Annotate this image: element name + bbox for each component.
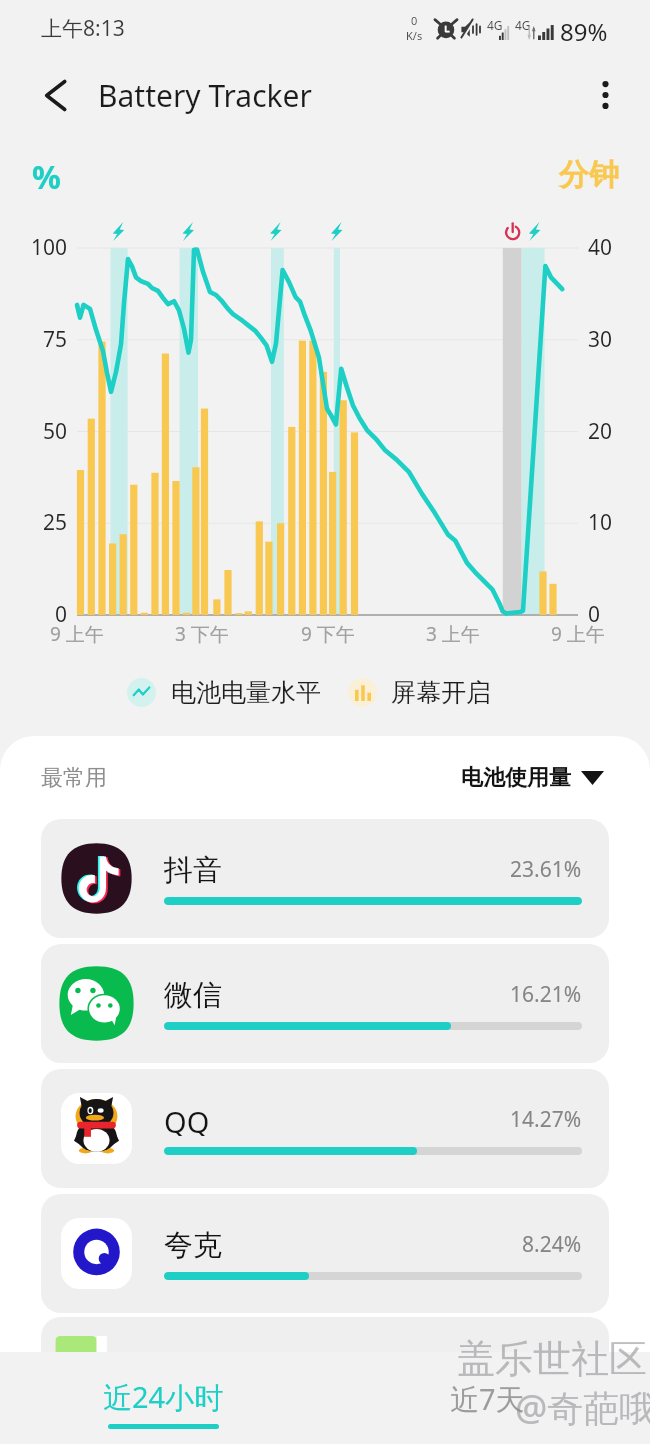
staticText: 3 下午 — [175, 621, 229, 647]
staticText: % — [32, 155, 61, 199]
staticText: 4G — [515, 17, 531, 33]
button[interactable] — [41, 1317, 609, 1352]
staticText: 8.24% — [522, 1230, 582, 1259]
staticText: K/s — [406, 28, 423, 43]
staticText: 75 — [43, 325, 68, 354]
staticText: @奇葩哦 — [515, 1383, 650, 1432]
button[interactable]: 近7天 — [416, 1352, 558, 1444]
staticText: 16.21% — [510, 980, 582, 1009]
button[interactable]: QQ — [41, 1069, 609, 1188]
staticText: 最常用 — [41, 764, 107, 792]
staticText: 30 — [588, 325, 613, 354]
staticText: 0 — [411, 13, 418, 28]
staticText: 10 — [588, 508, 613, 537]
staticText: 4G — [487, 17, 503, 33]
staticText: 9 下午 — [301, 621, 355, 647]
button[interactable]: More options — [574, 64, 636, 126]
staticText: 40 — [588, 233, 613, 262]
staticText: 50 — [43, 417, 68, 446]
staticText: 屏幕开启 — [391, 677, 491, 707]
staticText: 电池使用量 — [461, 764, 571, 792]
button[interactable]: 微信 — [41, 944, 609, 1063]
button[interactable]: Back — [22, 62, 88, 128]
staticText: 9 上午 — [50, 621, 104, 647]
staticText: 0 — [588, 600, 601, 629]
staticText: Battery Tracker — [98, 75, 312, 116]
staticText: 100 — [31, 233, 68, 262]
button[interactable]: 抖音 — [41, 819, 609, 938]
staticText: 14.27% — [510, 1105, 582, 1134]
staticText: 电池电量水平 — [171, 677, 321, 707]
staticText: 23.61% — [510, 855, 582, 884]
staticText: QQ — [164, 1102, 210, 1136]
staticText: 0 — [55, 600, 68, 629]
button[interactable]: 近24小时 — [92, 1352, 234, 1444]
staticText: 分钟 — [559, 156, 619, 194]
button[interactable]: 夸克 — [41, 1194, 609, 1313]
staticText: 25 — [43, 508, 68, 537]
staticText: 20 — [588, 417, 613, 446]
button[interactable]: 电池使用量 — [461, 764, 604, 792]
staticText: 夸克 — [164, 1227, 222, 1261]
staticText: 抖音 — [164, 852, 222, 886]
staticText: 微信 — [164, 977, 222, 1011]
staticText: 3 上午 — [426, 621, 480, 647]
staticText: 上午8:13 — [41, 14, 125, 43]
staticText: 近7天 — [450, 1379, 525, 1419]
staticText: 9 上午 — [551, 621, 605, 647]
staticText: 盖乐世社区 — [457, 1335, 647, 1383]
staticText: 近24小时 — [103, 1377, 224, 1417]
staticText: 89% — [560, 15, 608, 48]
